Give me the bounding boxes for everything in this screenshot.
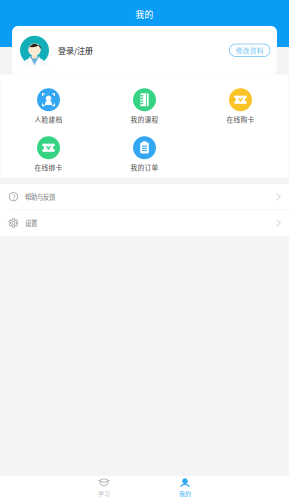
staticText: 学习: [98, 489, 110, 498]
button[interactable]: 修改资料: [229, 44, 270, 56]
staticText: 我的订单: [130, 162, 158, 172]
staticText: 设置: [25, 218, 37, 228]
staticText: 帮助与反馈: [25, 192, 55, 201]
button[interactable]: ?: [0, 184, 289, 209]
button[interactable]: 人脸建档: [0, 88, 96, 123]
staticText: 修改资料: [236, 45, 264, 55]
staticText: 人脸建档: [34, 114, 62, 124]
staticText: ?: [12, 191, 15, 202]
staticText: 在线购卡: [226, 114, 254, 124]
staticText: 登录/注册: [58, 44, 93, 56]
button[interactable]: 设置: [0, 210, 289, 236]
staticText: 我的: [135, 8, 153, 20]
button[interactable]: 学习: [63, 476, 144, 500]
staticText: 在线绑卡: [34, 162, 62, 172]
button[interactable]: 我的: [144, 476, 225, 500]
button[interactable]: 我的订单: [96, 136, 192, 171]
button[interactable]: 在线绑卡: [0, 136, 96, 171]
staticText: 我的课程: [130, 114, 158, 124]
button[interactable]: 在线购卡: [192, 88, 288, 123]
button[interactable]: 我的课程: [96, 88, 192, 123]
staticText: 我的: [179, 489, 191, 498]
